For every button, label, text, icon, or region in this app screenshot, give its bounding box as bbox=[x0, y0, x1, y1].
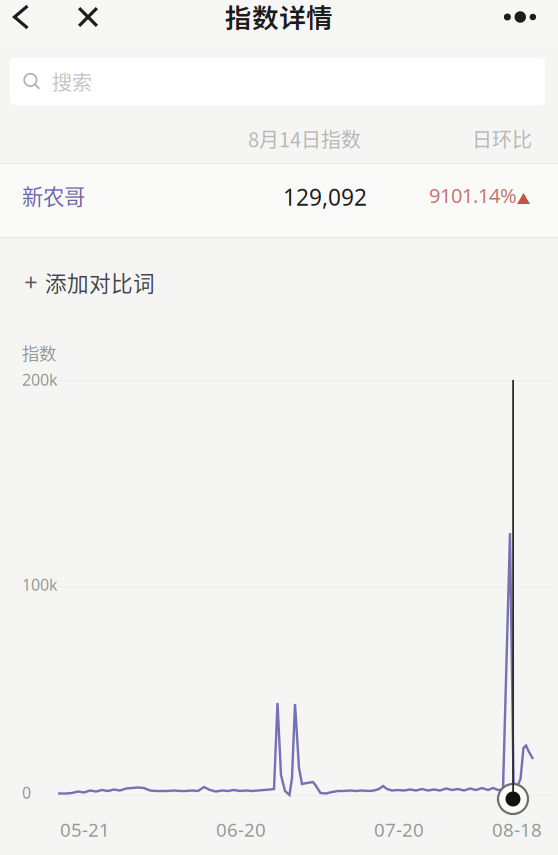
button[interactable]: Back bbox=[0, 0, 42, 39]
staticText: 日环比 bbox=[472, 124, 532, 153]
staticText: 指数详情 bbox=[225, 0, 333, 36]
staticText: 200k bbox=[22, 369, 58, 390]
button[interactable]: + bbox=[0, 256, 558, 308]
staticText: 0 bbox=[22, 782, 31, 803]
staticText: 添加对比词 bbox=[45, 266, 155, 298]
staticText: + bbox=[24, 266, 38, 298]
staticText: 指数 bbox=[22, 340, 56, 365]
staticText: 9101.14% bbox=[429, 182, 517, 209]
staticText: 06-20 bbox=[216, 817, 266, 842]
staticText: 07-20 bbox=[374, 817, 424, 842]
button[interactable]: More options bbox=[494, 0, 546, 39]
staticText: 08-18 bbox=[492, 817, 542, 842]
staticText: 05-21 bbox=[60, 817, 110, 842]
staticText: 129,092 bbox=[283, 182, 367, 212]
staticText: 新农哥 bbox=[22, 180, 85, 211]
staticText: 搜索 bbox=[52, 67, 92, 96]
button[interactable]: Close bbox=[65, 0, 111, 39]
button[interactable]: 搜索 bbox=[10, 58, 545, 105]
staticText: 8月14日指数 bbox=[248, 124, 361, 153]
staticText: 100k bbox=[22, 574, 58, 595]
